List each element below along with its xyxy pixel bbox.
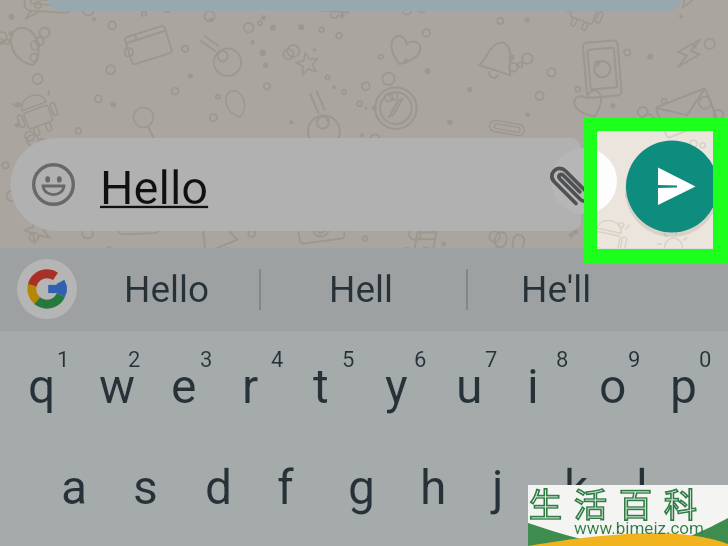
button[interactable]: 1 bbox=[57, 347, 71, 376]
staticText: 9 bbox=[628, 347, 641, 373]
button[interactable]: t bbox=[313, 358, 343, 422]
button[interactable]: h bbox=[420, 459, 450, 523]
button[interactable]: 0 bbox=[699, 347, 713, 376]
staticText: l bbox=[636, 459, 648, 515]
staticText: 4 bbox=[271, 347, 284, 373]
button[interactable]: k bbox=[564, 459, 594, 523]
staticText: 5 bbox=[342, 347, 355, 373]
button[interactable]: 4 bbox=[271, 347, 285, 376]
button[interactable]: e bbox=[171, 358, 201, 422]
staticText: y bbox=[385, 358, 408, 414]
staticText: u bbox=[456, 358, 483, 414]
staticText: Hell bbox=[329, 268, 394, 311]
staticText: p bbox=[670, 358, 697, 414]
staticText: e bbox=[171, 358, 197, 414]
button[interactable]: q bbox=[28, 358, 58, 422]
staticText: 6 bbox=[414, 347, 427, 373]
button[interactable]: Hello bbox=[95, 248, 260, 331]
staticText: He'll bbox=[521, 268, 592, 311]
button[interactable]: j bbox=[492, 459, 522, 523]
button[interactable]: w bbox=[99, 358, 129, 422]
button[interactable]: l bbox=[636, 459, 666, 523]
button[interactable]: u bbox=[456, 358, 486, 422]
staticText: d bbox=[205, 459, 233, 515]
staticText: Hello bbox=[124, 268, 210, 311]
staticText: h bbox=[420, 459, 447, 515]
button[interactable]: Hell bbox=[261, 248, 466, 331]
button[interactable]: s bbox=[133, 459, 163, 523]
staticText: 1 bbox=[57, 347, 70, 373]
button[interactable]: g bbox=[348, 459, 378, 523]
button[interactable]: i bbox=[527, 358, 557, 422]
button[interactable]: 7 bbox=[485, 347, 499, 376]
staticText: 3 bbox=[200, 347, 213, 373]
staticText: 0 bbox=[699, 347, 712, 373]
button[interactable]: Message input bbox=[11, 142, 636, 230]
staticText: r bbox=[242, 358, 259, 414]
staticText: t bbox=[313, 358, 329, 414]
button[interactable]: d bbox=[205, 459, 235, 523]
staticText: 8 bbox=[556, 347, 569, 373]
button[interactable]: He'll bbox=[467, 248, 672, 331]
staticText: k bbox=[564, 459, 589, 515]
button[interactable]: a bbox=[61, 459, 91, 523]
staticText: o bbox=[599, 358, 627, 414]
staticText: 2 bbox=[128, 347, 141, 373]
button[interactable]: 2 bbox=[128, 347, 142, 376]
button[interactable]: p bbox=[670, 358, 700, 422]
staticText: q bbox=[28, 358, 56, 414]
button[interactable]: 3 bbox=[200, 347, 214, 376]
staticText: w bbox=[99, 358, 129, 414]
button[interactable]: r bbox=[242, 358, 272, 422]
button[interactable]: 6 bbox=[414, 347, 428, 376]
button[interactable]: 9 bbox=[628, 347, 642, 376]
button[interactable]: y bbox=[385, 358, 415, 422]
staticText: j bbox=[492, 459, 504, 515]
staticText: f bbox=[277, 459, 294, 515]
staticText: 7 bbox=[485, 347, 498, 373]
staticText: Hello bbox=[100, 160, 209, 215]
staticText: www.bimeiz.com bbox=[574, 518, 704, 538]
staticText: i bbox=[527, 358, 539, 414]
button[interactable]: 5 bbox=[342, 347, 356, 376]
button[interactable]: o bbox=[599, 358, 629, 422]
button[interactable]: 8 bbox=[556, 347, 570, 376]
staticText: a bbox=[61, 459, 88, 515]
staticText: s bbox=[133, 459, 158, 515]
staticText: 生活百科 bbox=[523, 479, 703, 527]
staticText: g bbox=[348, 459, 375, 515]
button[interactable]: f bbox=[277, 459, 307, 523]
